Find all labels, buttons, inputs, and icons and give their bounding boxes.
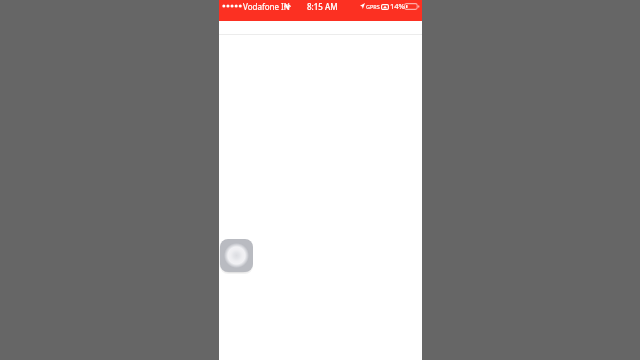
staticText: GPRS [366,3,380,10]
staticText: 14% [390,1,405,11]
button[interactable]: Loading [220,239,253,272]
staticText: 8:15 AM [307,1,338,12]
staticText: Vodafone IN [243,1,290,12]
